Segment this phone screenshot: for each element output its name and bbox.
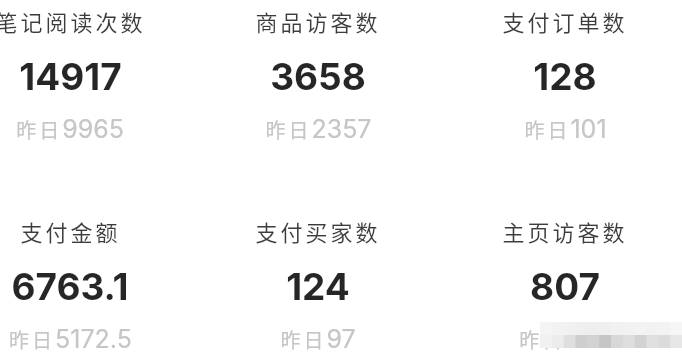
staticText: 128 bbox=[533, 54, 597, 99]
staticText: 124 bbox=[286, 264, 350, 309]
staticText: 支付订单数 bbox=[502, 5, 628, 37]
staticText: 昨日97 bbox=[280, 324, 356, 354]
staticText: 昨日688 bbox=[519, 324, 612, 354]
staticText: 昨日2357 bbox=[265, 114, 372, 144]
staticText: 昨日5172.5 bbox=[9, 324, 132, 354]
staticText: 6763.1 bbox=[11, 264, 129, 309]
staticText: 807 bbox=[530, 264, 600, 309]
staticText: 笔记阅读次数 bbox=[0, 5, 146, 37]
staticText: 支付金额 bbox=[20, 215, 121, 247]
staticText: 商品访客数 bbox=[255, 5, 381, 37]
staticText: 昨日101 bbox=[524, 114, 607, 144]
staticText: 3658 bbox=[270, 54, 366, 99]
staticText: 主页访客数 bbox=[502, 215, 628, 247]
staticText: 14917 bbox=[19, 54, 122, 99]
staticText: 昨日9965 bbox=[16, 114, 124, 144]
staticText: 支付买家数 bbox=[255, 215, 381, 247]
